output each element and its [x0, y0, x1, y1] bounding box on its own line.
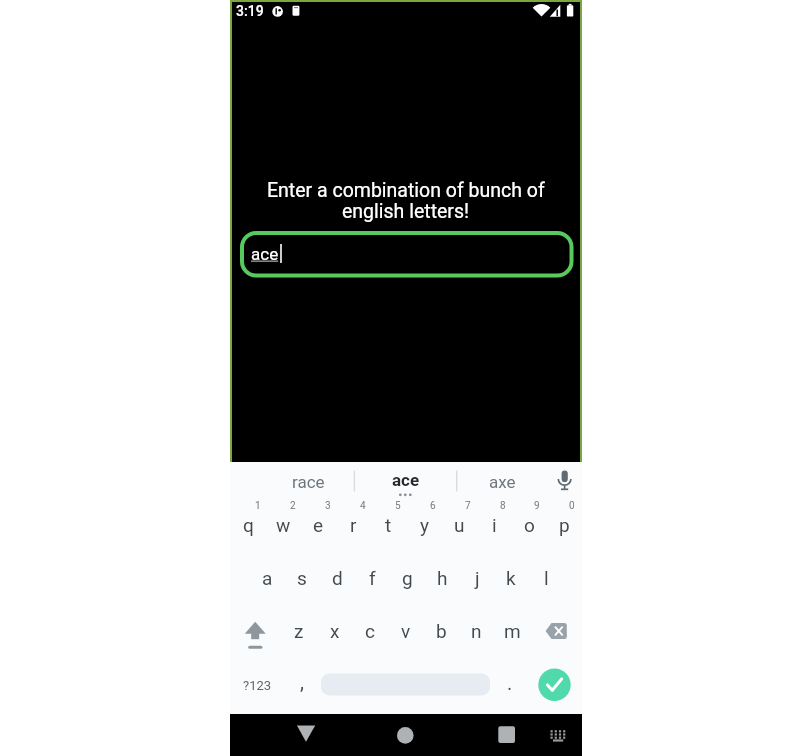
staticText: r [350, 514, 357, 536]
button[interactable] [546, 466, 582, 496]
button[interactable]: p [547, 503, 581, 547]
button[interactable]: f [355, 556, 389, 600]
button[interactable] [292, 720, 322, 750]
staticText: ace [392, 470, 420, 490]
staticText: y [420, 514, 429, 536]
button[interactable]: u [442, 503, 476, 547]
button[interactable]: e [301, 503, 335, 547]
button[interactable]: axe [454, 465, 550, 499]
button[interactable]: n [459, 609, 493, 653]
staticText: g [402, 567, 413, 589]
button[interactable]: j [460, 556, 494, 600]
staticText: . [507, 671, 513, 694]
button[interactable] [238, 611, 274, 655]
staticText: v [401, 620, 411, 642]
staticText: 1 [255, 500, 261, 512]
staticText: c [365, 620, 375, 642]
button[interactable]: a [250, 556, 284, 600]
staticText: z [294, 620, 304, 642]
button[interactable]: , [287, 661, 317, 701]
button[interactable]: . [495, 662, 525, 702]
button[interactable] [242, 233, 572, 276]
button[interactable]: k [494, 556, 528, 600]
staticText: l [544, 567, 549, 589]
button[interactable]: m [495, 609, 529, 653]
staticText: 7 [465, 500, 471, 512]
staticText: t [385, 514, 392, 536]
staticText: axe [489, 472, 516, 492]
button[interactable] [492, 720, 522, 750]
staticText: i [492, 514, 497, 536]
staticText: 6 [430, 500, 436, 512]
staticText: Enter a combination of bunch of [267, 179, 545, 202]
staticText: , [300, 670, 304, 693]
staticText: h [437, 567, 448, 589]
staticText: 8 [500, 500, 506, 512]
staticText: s [297, 567, 307, 589]
staticText: m [504, 620, 521, 642]
button[interactable] [538, 668, 571, 701]
staticText: j [475, 567, 480, 589]
staticText: 2 [290, 500, 296, 512]
button[interactable]: v [389, 609, 423, 653]
button[interactable]: b [424, 609, 458, 653]
staticText: u [454, 514, 465, 536]
button[interactable]: y [407, 503, 441, 547]
staticText: p [559, 514, 570, 536]
button[interactable] [544, 722, 572, 748]
staticText: 5 [395, 500, 401, 512]
button[interactable]: q [231, 503, 265, 547]
button[interactable]: c [353, 609, 387, 653]
staticText: race [292, 472, 325, 492]
staticText: d [332, 567, 343, 589]
staticText: 9 [534, 500, 540, 512]
button[interactable]: o [512, 503, 546, 547]
staticText: ace [251, 244, 279, 264]
staticText: a [262, 567, 273, 589]
staticText: w [276, 514, 291, 536]
staticText: english letters! [342, 200, 470, 223]
button[interactable]: l [529, 556, 563, 600]
button[interactable]: ace [358, 463, 454, 497]
staticText: f [369, 567, 376, 589]
button[interactable]: z [282, 609, 316, 653]
staticText: k [506, 567, 516, 589]
button[interactable]: w [266, 503, 300, 547]
button[interactable] [321, 668, 490, 700]
button[interactable]: r [336, 503, 370, 547]
button[interactable]: s [285, 556, 319, 600]
staticText: n [471, 620, 482, 642]
button[interactable]: h [425, 556, 459, 600]
button[interactable]: i [477, 503, 511, 547]
button[interactable] [391, 720, 421, 750]
staticText: 3 [325, 500, 331, 512]
staticText: o [524, 514, 535, 536]
staticText: 3:19 [236, 3, 264, 19]
staticText: 4 [360, 500, 366, 512]
staticText: e [313, 514, 324, 536]
button[interactable]: t [371, 503, 405, 547]
staticText: q [243, 514, 254, 536]
button[interactable]: x [318, 609, 352, 653]
button[interactable]: race [258, 465, 358, 499]
staticText: x [330, 620, 340, 642]
button[interactable] [538, 611, 574, 655]
button[interactable]: ?123 [234, 665, 280, 705]
staticText: ?123 [243, 678, 272, 693]
button[interactable]: g [390, 556, 424, 600]
button[interactable]: d [320, 556, 354, 600]
staticText: 0 [569, 500, 575, 512]
staticText: b [436, 620, 447, 642]
